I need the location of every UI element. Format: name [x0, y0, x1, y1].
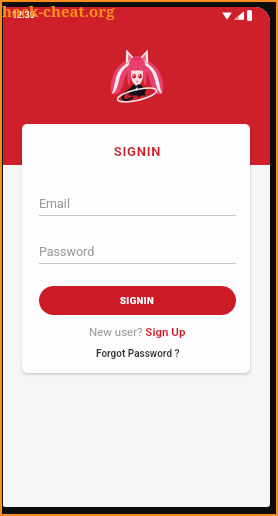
button[interactable]: New user? Sign Up — [39, 325, 236, 338]
button[interactable]: Password — [39, 244, 236, 264]
button[interactable]: SIGNIN — [39, 286, 236, 315]
button[interactable]: Forgot Password ? — [39, 348, 236, 360]
staticText: Forgot Password ? — [96, 348, 180, 360]
staticText: New user? Sign Up — [89, 325, 186, 338]
staticText: Email — [39, 196, 70, 211]
staticText: hack-cheat.org — [2, 1, 115, 21]
button[interactable]: Email — [39, 196, 236, 216]
staticText: SIGNIN — [39, 144, 236, 159]
staticText: SIGNIN — [120, 295, 155, 306]
staticText: Password — [39, 244, 95, 259]
staticText: 12:30 — [12, 10, 35, 21]
